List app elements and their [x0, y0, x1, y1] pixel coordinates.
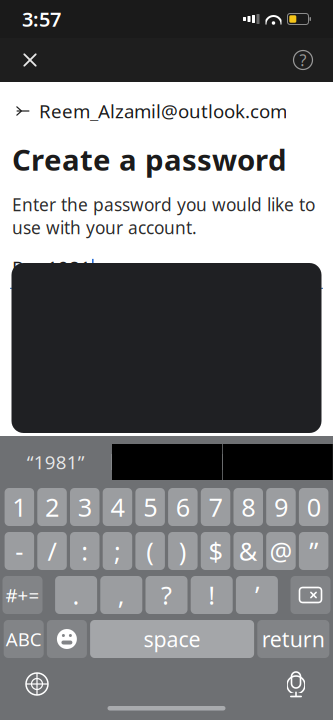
staticText: ,: [118, 578, 125, 612]
staticText: ABC: [6, 627, 42, 651]
staticText: 4: [110, 490, 124, 524]
button[interactable]: ,: [100, 576, 142, 614]
button[interactable]: 8: [233, 488, 263, 526]
button[interactable]: Close: [8, 38, 52, 82]
button[interactable]: #+=: [2, 576, 42, 614]
staticText: 2: [45, 490, 59, 524]
button[interactable]: ”: [299, 532, 328, 570]
staticText: .: [73, 578, 80, 612]
staticText: ;: [114, 534, 121, 568]
staticText: (: [146, 534, 154, 568]
staticText: Enter the password you would like to use…: [12, 193, 315, 239]
staticText: “1981”: [27, 450, 85, 474]
button[interactable]: !: [191, 576, 233, 614]
button[interactable]: 1: [5, 488, 34, 526]
button[interactable]: Switch keyboard: [14, 662, 60, 706]
staticText: #+=: [5, 583, 39, 607]
button[interactable]: Help: [281, 38, 325, 82]
button[interactable]: 2: [37, 488, 67, 526]
staticText: 7: [208, 490, 222, 524]
button[interactable]: return: [257, 620, 329, 658]
staticText: !: [208, 578, 215, 612]
staticText: Reem_Alzamil@outlook.com: [39, 99, 287, 123]
button[interactable]: 9: [266, 488, 296, 526]
button[interactable]: &: [233, 532, 263, 570]
button[interactable]: 3: [70, 488, 99, 526]
staticText: /: [47, 534, 56, 568]
staticText: Rsz.1981: [12, 255, 91, 280]
staticText: 9: [274, 490, 288, 524]
button[interactable]: Dictate: [273, 662, 319, 706]
button[interactable]: 5: [135, 488, 165, 526]
staticText: ”: [309, 534, 318, 568]
button[interactable]: Emoji: [47, 620, 87, 658]
staticText: -: [15, 534, 23, 568]
button[interactable]: 6: [168, 488, 198, 526]
button[interactable]: ?: [145, 576, 187, 614]
staticText: 5: [143, 490, 157, 524]
button[interactable]: (: [135, 532, 165, 570]
button[interactable]: “1981”: [0, 444, 111, 480]
staticText: 6: [176, 490, 190, 524]
button[interactable]: Reem_Alzamil@outlook.com: [0, 96, 333, 126]
staticText: ?: [161, 578, 172, 612]
staticText: Create a password: [12, 140, 287, 179]
staticText: ’: [255, 578, 259, 612]
button[interactable]: $: [201, 532, 230, 570]
button[interactable]: /: [37, 532, 67, 570]
button[interactable]: 0: [299, 488, 328, 526]
button[interactable]: ABC: [4, 620, 44, 658]
button[interactable]: :: [70, 532, 99, 570]
staticText: return: [262, 625, 325, 653]
button[interactable]: ;: [103, 532, 132, 570]
button[interactable]: @: [266, 532, 296, 570]
staticText: 1: [12, 490, 26, 524]
button[interactable]: space: [90, 620, 254, 658]
staticText: @: [269, 534, 292, 568]
staticText: &: [239, 534, 258, 568]
staticText: ?: [299, 49, 306, 71]
staticText: 3:57: [22, 6, 61, 32]
button[interactable]: 4: [103, 488, 132, 526]
button[interactable]: 7: [201, 488, 230, 526]
staticText: $: [208, 534, 222, 568]
staticText: ): [179, 534, 187, 568]
button[interactable]: -: [5, 532, 34, 570]
staticText: 3: [78, 490, 92, 524]
button[interactable]: ’: [236, 576, 278, 614]
staticText: :: [81, 534, 88, 568]
button[interactable]: ): [168, 532, 198, 570]
staticText: space: [144, 625, 201, 653]
staticText: 0: [307, 490, 321, 524]
button[interactable]: .: [55, 576, 97, 614]
button[interactable]: Delete: [290, 576, 330, 614]
staticText: 8: [241, 490, 255, 524]
